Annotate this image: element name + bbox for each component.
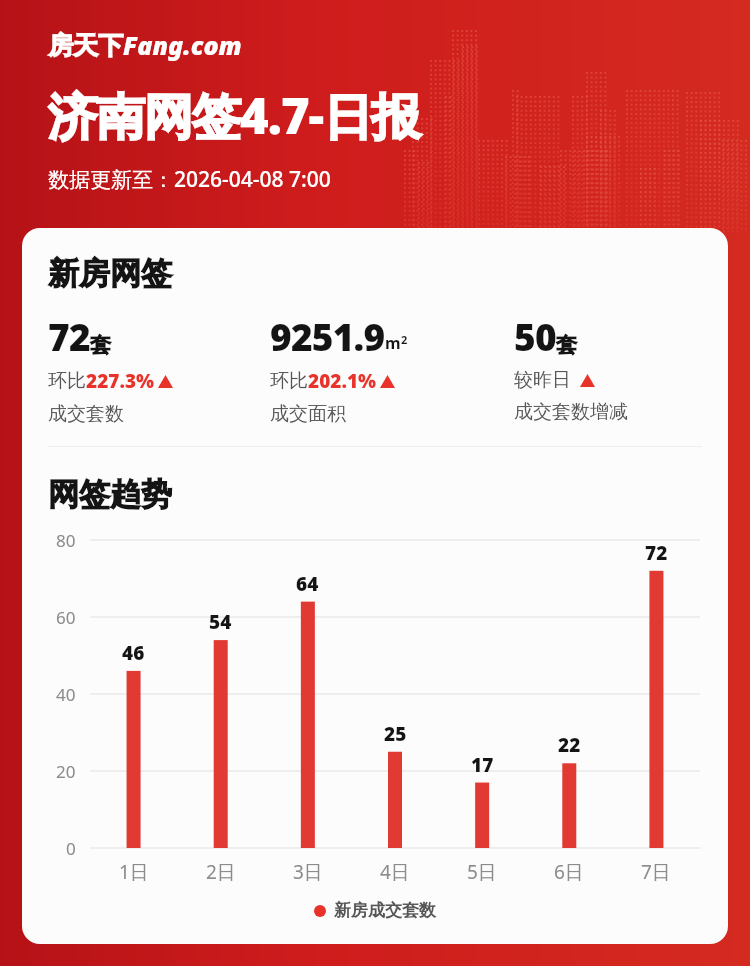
staticText: 80 [56, 529, 76, 552]
staticText: 2日 [206, 859, 236, 885]
staticText: 2 [401, 332, 408, 347]
staticText: 227.3% [86, 368, 155, 394]
staticText: 套 [556, 332, 577, 358]
staticText: 9251.9 [270, 311, 385, 361]
button[interactable]: 50 [514, 311, 714, 424]
staticText: 房天下 [48, 30, 123, 61]
staticText: 成交套数 [48, 402, 124, 426]
staticText: 46 [122, 640, 145, 666]
button[interactable]: 9251.9 [270, 311, 514, 426]
staticText: m [385, 332, 401, 354]
staticText: 64 [296, 571, 319, 597]
staticText: 新房网签 [48, 254, 172, 293]
staticText: 54 [209, 609, 232, 635]
staticText: 202.1% [308, 368, 377, 394]
staticText: 7日 [641, 859, 671, 885]
staticText: 环比 [270, 369, 308, 393]
staticText: 新房成交套数 [334, 900, 436, 921]
staticText: 成交面积 [270, 402, 346, 426]
button[interactable]: 新房成交套数 [22, 900, 728, 921]
staticText: 4日 [380, 859, 410, 885]
staticText: 成交套数增减 [514, 400, 628, 424]
staticText: Fang.com [123, 28, 242, 62]
button[interactable]: 房天下 [48, 28, 242, 62]
staticText: 环比 [48, 369, 86, 393]
staticText: 济南网签4.7-日报 [48, 82, 420, 149]
staticText: 套 [90, 332, 111, 358]
staticText: 40 [56, 683, 76, 706]
staticText: 17 [471, 752, 494, 778]
staticText: 72 [48, 311, 90, 361]
staticText: 3日 [293, 859, 323, 885]
button[interactable]: 72 [48, 311, 270, 426]
staticText: 20 [56, 760, 76, 783]
staticText: 网签趋势 [48, 475, 172, 514]
staticText: 22 [558, 732, 581, 758]
staticText: 72 [645, 540, 668, 566]
staticText: 6日 [554, 859, 584, 885]
staticText: 1日 [119, 859, 149, 885]
staticText: 数据更新至：2026-04-08 7:00 [48, 165, 331, 194]
staticText: 0 [66, 837, 76, 860]
staticText: 25 [384, 721, 407, 747]
staticText: 50 [514, 311, 556, 361]
staticText: 5日 [467, 859, 497, 885]
staticText: 较昨日 [514, 368, 571, 392]
staticText: 60 [56, 606, 76, 629]
